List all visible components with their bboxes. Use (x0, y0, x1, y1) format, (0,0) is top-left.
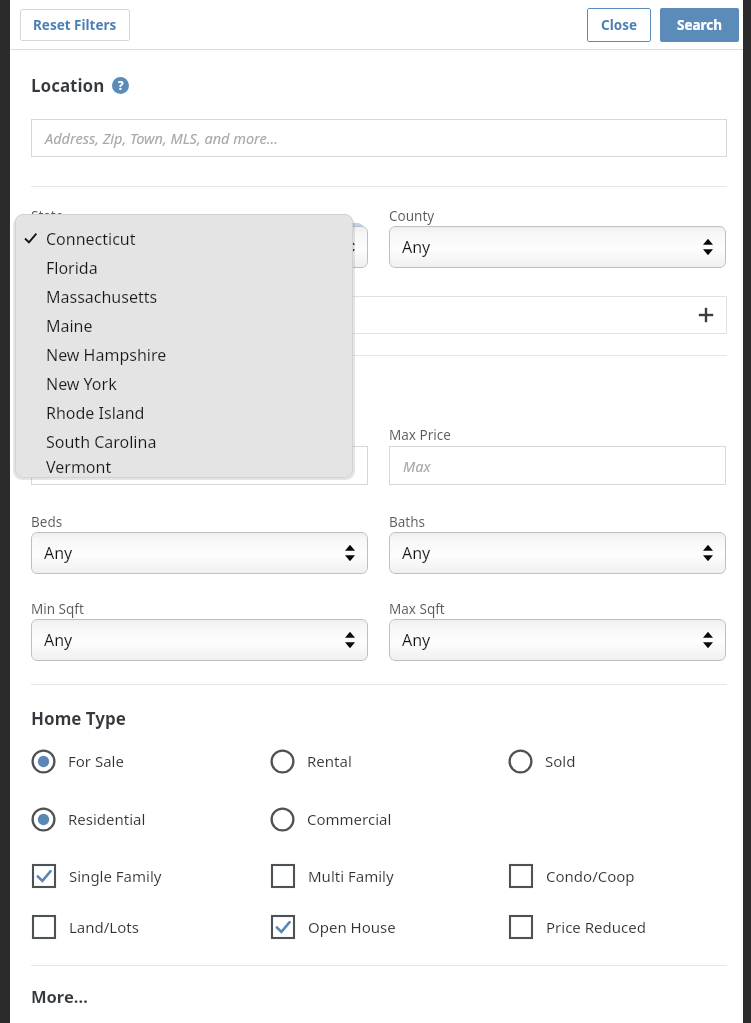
staticText: Commercial (307, 809, 392, 829)
staticText: New Hampshire (46, 344, 167, 366)
staticText: Max Sqft (389, 600, 445, 618)
button[interactable]: Sold (508, 747, 576, 775)
staticText: Land/Lots (69, 917, 139, 937)
staticText: Condo/Coop (546, 866, 635, 886)
staticText: Min (45, 456, 70, 476)
staticText: Residential (68, 809, 146, 829)
button[interactable]: Vermont (15, 456, 353, 478)
staticText: Baths (389, 513, 426, 531)
staticText: Rental (307, 751, 352, 771)
button[interactable]: Reset Filters (20, 9, 130, 41)
button[interactable]: Max (389, 446, 726, 485)
staticText: County (389, 207, 435, 225)
staticText: Beds (31, 513, 63, 531)
staticText: Min Price (31, 426, 90, 444)
button[interactable]: Close (587, 8, 651, 42)
staticText: Max Price (389, 426, 451, 444)
button[interactable]: Connecticut (15, 224, 353, 253)
staticText: Location (31, 74, 105, 97)
staticText: Any (44, 542, 73, 564)
staticText: Any (402, 542, 431, 564)
staticText: More… (31, 985, 88, 1007)
button[interactable]: Connecticut (31, 226, 368, 268)
staticText: Connecticut (44, 236, 134, 258)
staticText: Single Family (69, 866, 162, 886)
staticText: Reset Filters (33, 16, 117, 34)
button[interactable]: More… (31, 985, 88, 1007)
button[interactable]: Address, Zip, Town, MLS, and more… (31, 119, 727, 157)
staticText: State (31, 207, 64, 225)
button[interactable]: Any (389, 619, 726, 661)
button[interactable]: Florida (15, 253, 353, 282)
button[interactable]: Multi Family (270, 862, 394, 890)
staticText: Vermont (46, 456, 112, 478)
button[interactable]: Help about location (112, 77, 129, 94)
button[interactable]: Price Reduced (508, 913, 646, 941)
button[interactable]: Maine (15, 311, 353, 340)
button[interactable]: Single Family (31, 862, 162, 890)
staticText: New York (46, 373, 117, 395)
staticText: Search (677, 16, 723, 34)
staticText: Home Type (31, 707, 126, 730)
staticText: Open House (308, 917, 396, 937)
staticText: Price Reduced (546, 917, 646, 937)
button[interactable]: Commercial (270, 805, 392, 833)
staticText: Massachusetts (46, 286, 158, 308)
button[interactable]: Min (31, 446, 368, 485)
staticText: Sold (545, 751, 576, 771)
button[interactable]: South Carolina (15, 427, 353, 456)
button[interactable]: Rhode Island (15, 398, 353, 427)
button[interactable]: Any (31, 532, 368, 574)
button[interactable]: Land/Lots (31, 913, 139, 941)
button[interactable]: Residential (31, 805, 146, 833)
staticText: Any (402, 629, 431, 651)
button[interactable]: New Hampshire (15, 340, 353, 369)
button[interactable]: Condo/Coop (508, 862, 635, 890)
staticText: ? (118, 78, 124, 94)
button[interactable]: For Sale (31, 747, 124, 775)
staticText: Close (601, 16, 637, 34)
button[interactable]: Search (660, 8, 739, 42)
staticText: Florida (46, 257, 98, 279)
staticText: Max (403, 456, 431, 476)
staticText: Rhode Island (46, 402, 145, 424)
button[interactable]: Any (389, 532, 726, 574)
button[interactable]: Add more locations (31, 296, 727, 334)
staticText: Min Sqft (31, 600, 84, 618)
button[interactable]: Location (31, 74, 129, 97)
staticText: Maine (46, 315, 93, 337)
staticText: Multi Family (308, 866, 394, 886)
button[interactable]: Massachusetts (15, 282, 353, 311)
button[interactable]: Any (31, 619, 368, 661)
staticText: Any (402, 236, 431, 258)
button[interactable]: Open House (270, 913, 396, 941)
staticText: Address, Zip, Town, MLS, and more… (45, 128, 278, 148)
staticText: For Sale (68, 751, 124, 771)
button[interactable]: Rental (270, 747, 352, 775)
staticText: Connecticut (46, 228, 136, 250)
button[interactable]: New York (15, 369, 353, 398)
staticText: South Carolina (46, 431, 157, 453)
staticText: Any (44, 629, 73, 651)
button[interactable]: Any (389, 226, 726, 268)
